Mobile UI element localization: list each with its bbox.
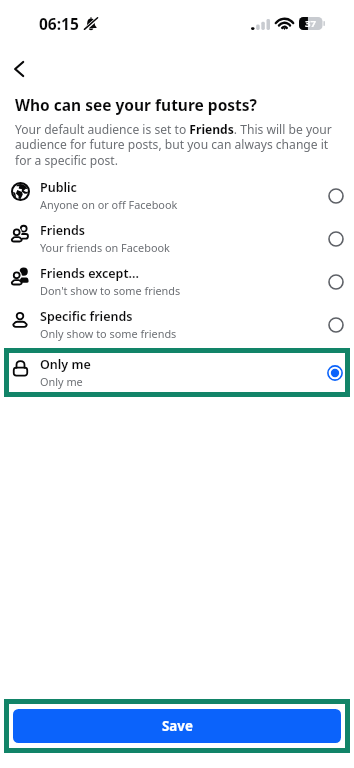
button[interactable]: Only me — [9, 353, 345, 392]
button[interactable]: Friends except... — [0, 260, 354, 303]
staticText: Anyone on or off Facebook — [40, 197, 178, 212]
staticText: Your default audience is set to Friends.… — [15, 121, 339, 169]
button[interactable]: Back — [3, 53, 35, 85]
button[interactable]: Friends — [0, 217, 354, 260]
button[interactable]: Save — [13, 709, 341, 743]
staticText: Save — [162, 717, 193, 735]
staticText: Only show to some friends — [40, 326, 177, 341]
staticText: Your friends on Facebook — [40, 240, 170, 255]
staticText: Only me — [40, 356, 91, 373]
staticText: Only me — [40, 374, 83, 389]
staticText: Friends — [40, 222, 85, 239]
staticText: Who can see your future posts? — [15, 94, 258, 115]
staticText: Public — [40, 179, 77, 196]
staticText: Specific friends — [40, 308, 133, 325]
button[interactable]: Public — [0, 174, 354, 217]
staticText: Don't show to some friends — [40, 283, 181, 298]
staticText: 06:15 — [39, 13, 79, 34]
staticText: 37 — [305, 17, 316, 30]
staticText: Friends except... — [40, 265, 139, 282]
button[interactable]: Specific friends — [0, 303, 354, 346]
